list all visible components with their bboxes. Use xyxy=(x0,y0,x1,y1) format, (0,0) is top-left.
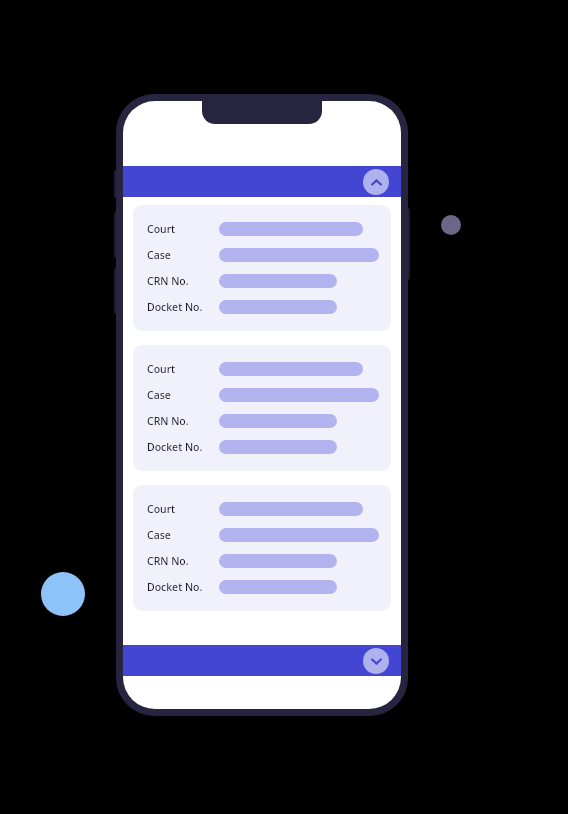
staticText: Case xyxy=(147,528,171,542)
staticText: Docket No. xyxy=(147,300,203,314)
staticText: Court xyxy=(147,362,176,376)
staticText: Court xyxy=(147,502,176,516)
staticText: CRN No. xyxy=(147,414,189,428)
button[interactable]: Scroll up xyxy=(363,169,389,195)
staticText: CRN No. xyxy=(147,554,189,568)
staticText: Docket No. xyxy=(147,440,203,454)
button[interactable]: Court xyxy=(133,485,391,611)
staticText: CRN No. xyxy=(147,274,189,288)
staticText: Docket No. xyxy=(147,580,203,594)
button[interactable]: Court xyxy=(133,205,391,331)
button[interactable]: Scroll down xyxy=(363,648,389,674)
staticText: Case xyxy=(147,248,171,262)
button[interactable]: Court xyxy=(133,345,391,471)
staticText: Case xyxy=(147,388,171,402)
staticText: Court xyxy=(147,222,176,236)
